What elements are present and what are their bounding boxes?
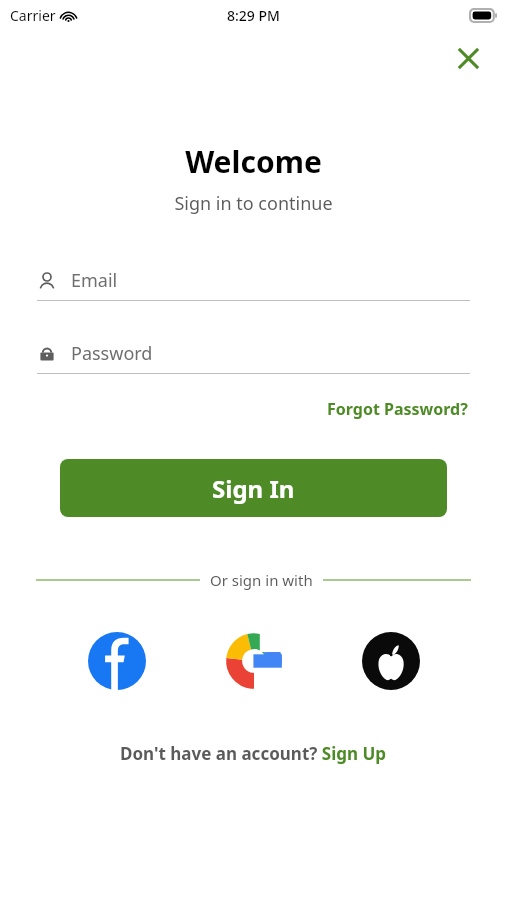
button[interactable]: Sign in with Apple — [362, 632, 420, 690]
button[interactable]: Password — [37, 341, 470, 374]
staticText: Forgot Password? — [327, 398, 468, 420]
button[interactable]: Sign in with Facebook — [88, 632, 146, 690]
staticText: Sign in to continue — [0, 191, 507, 216]
button[interactable]: Sign In — [60, 459, 447, 517]
button[interactable]: Don't have an account? Sign Up — [116, 738, 391, 769]
staticText: Password — [71, 341, 153, 366]
staticText: Email — [71, 268, 118, 293]
staticText: Or sign in with — [210, 570, 313, 590]
button[interactable]: Forgot Password? — [325, 394, 470, 424]
staticText: Don't have an account? Sign Up — [120, 742, 387, 765]
staticText: Sign In — [212, 472, 295, 505]
staticText: Welcome — [0, 141, 507, 182]
staticText: 8:29 PM — [227, 6, 280, 25]
staticText: Carrier — [10, 6, 56, 25]
button[interactable]: Email — [37, 268, 470, 301]
button[interactable]: Close — [451, 41, 485, 75]
button[interactable]: Sign in with Google — [225, 632, 283, 690]
